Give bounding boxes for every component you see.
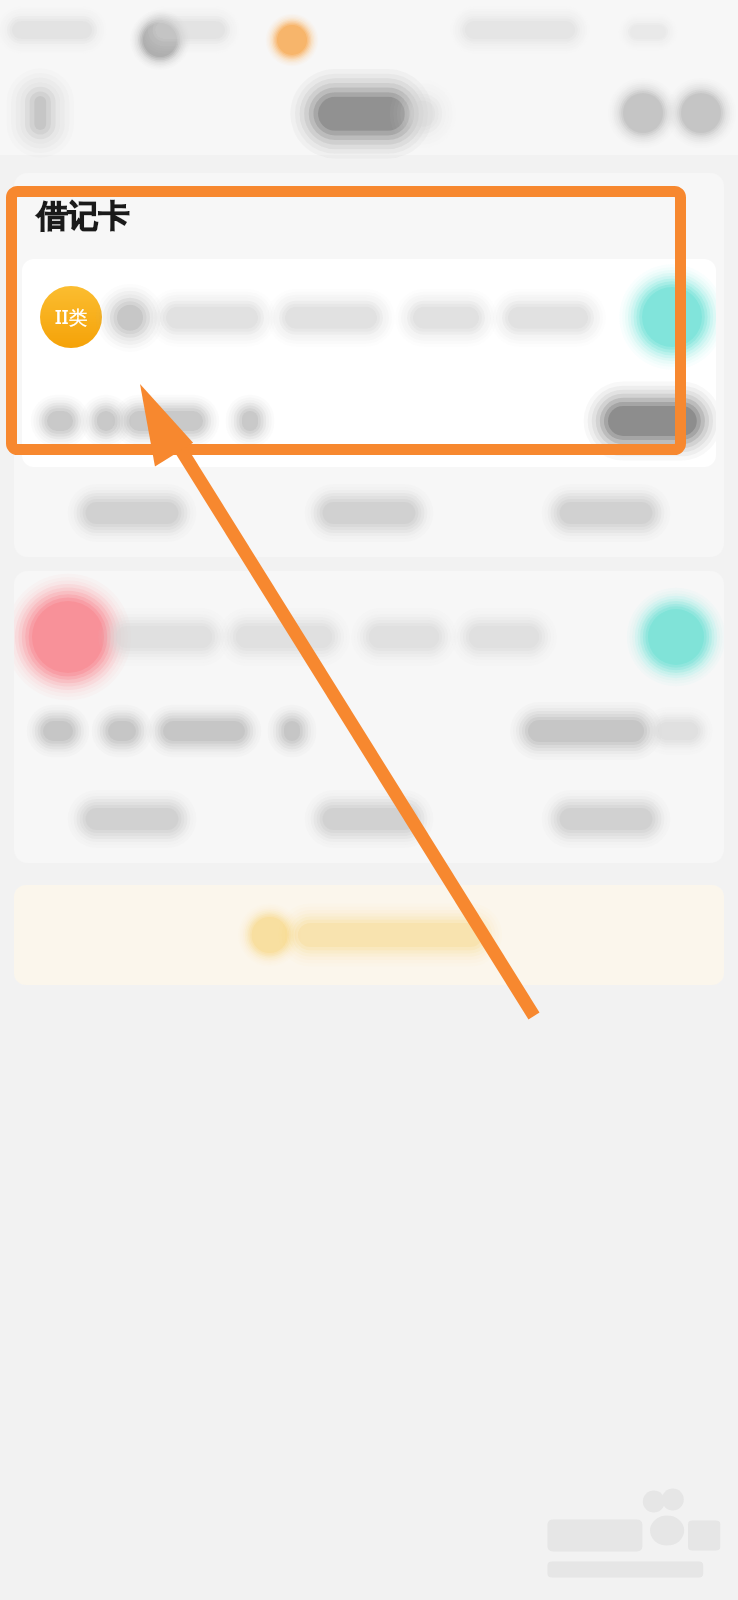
staticText: II类 (55, 304, 88, 330)
button[interactable] (487, 791, 724, 847)
button[interactable] (250, 485, 487, 541)
button[interactable] (14, 485, 250, 541)
button[interactable]: More (672, 84, 730, 142)
staticText: 借记卡 (36, 197, 129, 236)
button[interactable] (14, 791, 250, 847)
button[interactable]: Search (614, 84, 672, 142)
button[interactable]: 借记卡 (14, 173, 724, 557)
button[interactable] (250, 791, 487, 847)
button[interactable]: Back (16, 86, 70, 140)
button[interactable] (487, 485, 724, 541)
button[interactable] (14, 885, 724, 985)
button[interactable]: II类 (22, 259, 716, 467)
button[interactable] (14, 571, 724, 863)
